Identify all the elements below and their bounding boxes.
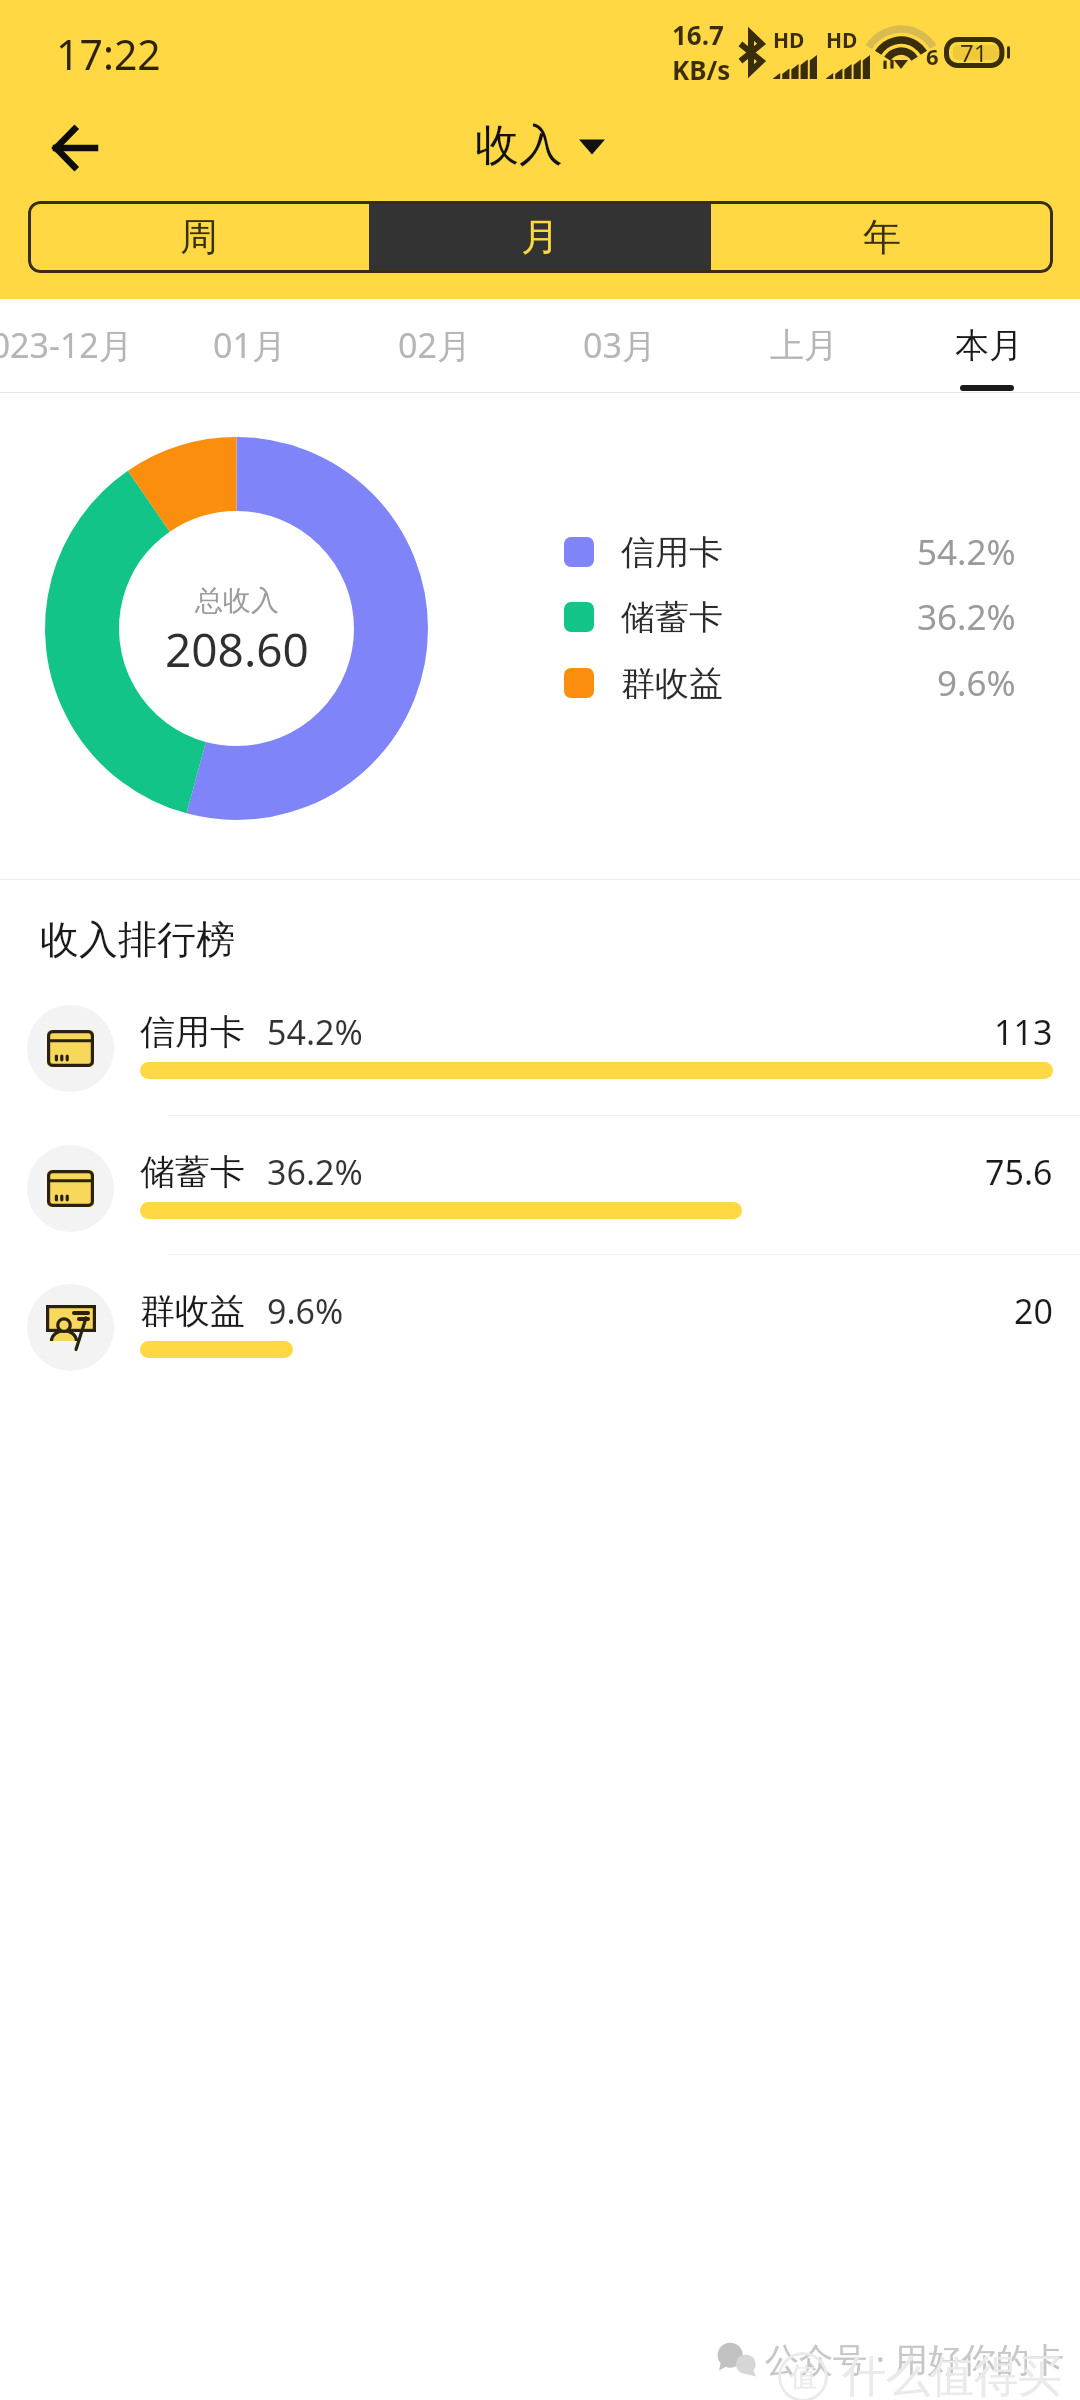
staticText: 36.2% (917, 593, 1016, 641)
staticText: 20 (1014, 1288, 1053, 1334)
staticText: 54.2% (917, 528, 1016, 576)
button[interactable]: 群收益 (0, 1259, 1080, 1394)
staticText: 月 (521, 213, 559, 261)
staticText: 17:22 (56, 26, 161, 82)
staticText: 值 (790, 2360, 817, 2394)
staticText: 75.6 (985, 1149, 1053, 1195)
staticText: 群收益 (621, 662, 723, 705)
button[interactable]: 群收益 (564, 654, 1016, 712)
button[interactable]: 储蓄卡 (0, 1120, 1080, 1255)
button[interactable]: 信用卡 (564, 523, 1016, 581)
button[interactable]: 2023-12月 (0, 299, 142, 391)
staticText: 9.6% (937, 659, 1016, 707)
staticText: 本月 (955, 324, 1023, 367)
staticText: 信用卡 (621, 531, 723, 574)
button[interactable]: 03月 (529, 299, 709, 391)
button[interactable]: 01月 (159, 299, 339, 391)
staticText: 周 (180, 213, 218, 261)
staticText: 208.60 (165, 618, 309, 681)
button[interactable]: 储蓄卡 (564, 588, 1016, 646)
staticText: 54.2% (267, 1009, 363, 1055)
staticText: 9.6% (267, 1288, 344, 1334)
button[interactable]: 本月 (899, 299, 1079, 391)
staticText: 71 (960, 36, 988, 69)
staticText: 总收入 (195, 583, 279, 618)
button[interactable]: 信用卡 (0, 980, 1080, 1115)
staticText: 信用卡 (140, 1010, 245, 1054)
staticText: 上月 (770, 324, 838, 367)
staticText: HD (773, 26, 805, 55)
staticText: 储蓄卡 (621, 596, 723, 639)
staticText: 36.2% (267, 1149, 363, 1195)
staticText: 公众号 · 用好你的卡 (765, 2336, 1064, 2382)
staticText: 收入排行榜 (40, 915, 235, 964)
staticText: 收入 (475, 118, 563, 173)
button[interactable]: 02月 (344, 299, 524, 391)
staticText: 什么值得买 (842, 2349, 1062, 2400)
staticText: 2023-12月 (0, 322, 133, 368)
staticText: 16.7 (672, 17, 724, 52)
staticText: 02月 (398, 322, 471, 368)
staticText: HD (826, 26, 858, 55)
staticText: 03月 (583, 322, 656, 368)
staticText: 6 (926, 41, 939, 71)
staticText: 01月 (213, 322, 286, 368)
button[interactable]: 月 (369, 201, 711, 273)
button[interactable]: 上月 (714, 299, 894, 391)
staticText: 113 (994, 1009, 1053, 1055)
staticText: KB/s (672, 52, 731, 87)
button[interactable]: 周 (28, 201, 369, 273)
button[interactable]: 年 (711, 201, 1053, 273)
button[interactable]: Back (32, 106, 116, 190)
staticText: 储蓄卡 (140, 1150, 245, 1194)
staticText: 年 (863, 213, 901, 261)
staticText: 群收益 (140, 1289, 245, 1333)
button[interactable]: 收入 (475, 118, 605, 173)
